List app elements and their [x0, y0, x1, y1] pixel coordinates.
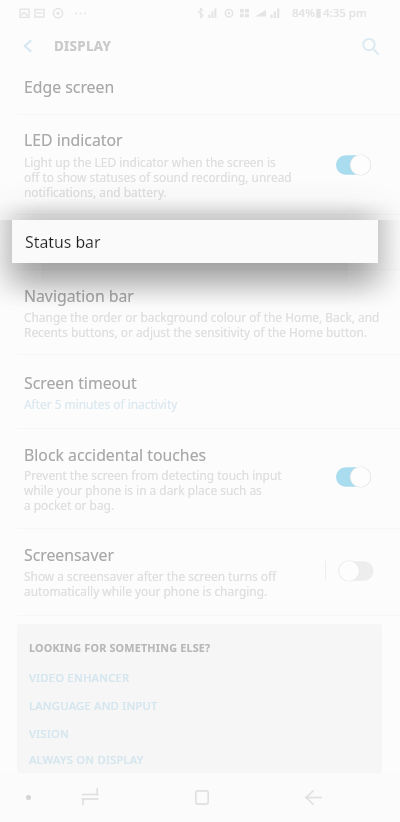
staticText: Light up the LED indicator when the scre… [24, 154, 292, 200]
staticText: LED indicator [24, 129, 123, 151]
staticText: Screensaver [24, 544, 114, 566]
button[interactable]: ALWAYS ON DISPLAY [17, 747, 382, 771]
staticText: ALWAYS ON DISPLAY [29, 752, 144, 767]
button[interactable]: Toggle on [330, 462, 382, 492]
staticText: Block accidental touches [24, 444, 207, 466]
staticText: Screen timeout [24, 372, 137, 394]
staticText: Status bar [24, 231, 100, 253]
staticText: VISION [29, 726, 69, 741]
button[interactable]: Back [290, 773, 336, 822]
button[interactable]: Toggle on [330, 150, 382, 180]
staticText: Edge screen [24, 76, 115, 98]
button[interactable]: More options [5, 773, 51, 822]
button[interactable]: VIDEO ENHANCER [17, 665, 382, 689]
staticText: 4:35 pm [323, 5, 367, 21]
button[interactable]: Status bar [12, 220, 378, 263]
staticText: Change the order or background colour of… [24, 309, 380, 340]
staticText: After 5 minutes of inactivity [24, 396, 178, 412]
staticText: Prevent the screen from detecting touch … [24, 467, 282, 513]
staticText: Show a screensaver after the screen turn… [24, 568, 277, 599]
button[interactable]: Recent apps [67, 773, 113, 822]
button[interactable]: Toggle off [330, 556, 382, 586]
staticText: LOOKING FOR SOMETHING ELSE? [29, 640, 211, 655]
button[interactable]: LANGUAGE AND INPUT [17, 693, 382, 717]
staticText: VIDEO ENHANCER [29, 670, 130, 685]
button[interactable]: Home [179, 773, 225, 822]
staticText: 84% [292, 5, 315, 21]
staticText: Navigation bar [24, 285, 134, 307]
button[interactable]: VISION [17, 721, 382, 745]
staticText: LANGUAGE AND INPUT [29, 698, 158, 713]
button[interactable]: Navigate up [8, 26, 48, 66]
button[interactable]: Search [348, 26, 392, 66]
staticText: DISPLAY [54, 37, 112, 55]
staticText: Status bar [25, 231, 101, 253]
